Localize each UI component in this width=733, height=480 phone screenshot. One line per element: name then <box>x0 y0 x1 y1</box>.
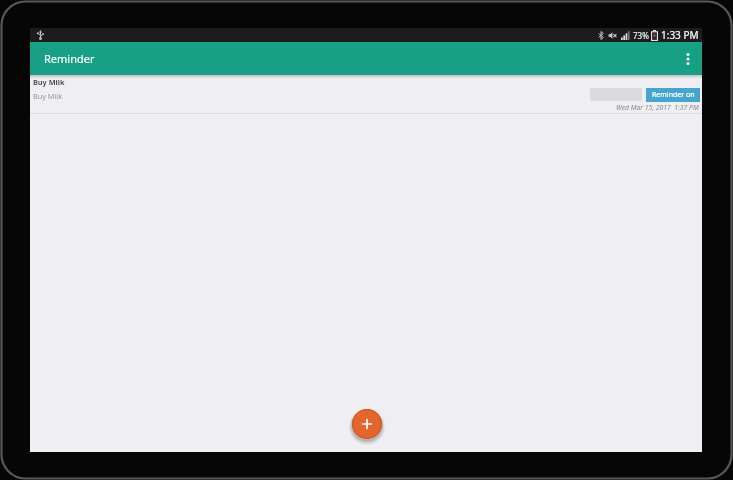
staticText: Reminder <box>44 51 95 66</box>
staticText: Wed Mar 15, 2017 1:37 PM <box>616 103 699 112</box>
staticText: Buy Milk <box>33 91 63 101</box>
staticText: Buy Milk <box>33 77 65 87</box>
staticText: Reminder on <box>652 90 695 100</box>
staticText: 73% <box>633 30 649 41</box>
button[interactable] <box>352 409 382 439</box>
staticText: 1:33 PM <box>661 28 699 42</box>
button[interactable]: Reminder on <box>646 88 700 102</box>
button[interactable]: Buy Milk <box>30 75 702 114</box>
button[interactable] <box>678 49 698 69</box>
